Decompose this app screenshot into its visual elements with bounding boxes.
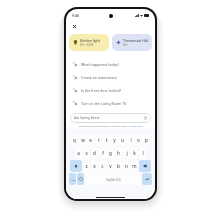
staticText: j <box>126 150 128 156</box>
button[interactable]: e <box>87 134 94 146</box>
staticText: a <box>77 150 80 156</box>
staticText: z <box>85 163 88 169</box>
button[interactable]: s <box>83 147 90 159</box>
staticText: ?123 <box>70 178 76 181</box>
button[interactable]: Backspace <box>139 160 151 172</box>
staticText: n <box>125 163 128 169</box>
button[interactable]: Thermostat Hall <box>112 34 152 51</box>
staticText: Thermostat Hall <box>123 38 149 42</box>
staticText: v <box>109 163 112 169</box>
staticText: Create an automation <box>81 75 117 80</box>
button[interactable]: Shift <box>70 160 82 172</box>
staticText: t <box>106 137 108 143</box>
button[interactable]: o <box>135 134 142 146</box>
staticText: h <box>117 150 120 156</box>
staticText: l <box>142 150 144 156</box>
button[interactable]: j <box>123 147 130 159</box>
button[interactable]: h <box>115 147 122 159</box>
button[interactable]: Ask Spring Street <box>70 113 151 123</box>
staticText: u <box>121 137 124 143</box>
button[interactable]: i <box>127 134 134 146</box>
button[interactable]: ?123 <box>69 173 76 185</box>
button[interactable]: x <box>91 160 98 172</box>
button[interactable]: q <box>71 134 78 146</box>
staticText: g <box>109 150 112 156</box>
button[interactable]: n <box>123 160 130 172</box>
button[interactable]: Learn more <box>130 125 143 128</box>
button[interactable]: What happened today? <box>66 58 155 71</box>
button[interactable]: Create an automation <box>66 71 155 84</box>
staticText: Turn on the Living Room TV <box>81 101 127 106</box>
button[interactable]: d <box>91 147 98 159</box>
staticText: Is the front door locked? <box>81 88 122 93</box>
button[interactable]: p <box>143 134 150 146</box>
staticText: o <box>137 137 140 143</box>
staticText: k <box>133 150 136 156</box>
staticText: i <box>130 137 132 143</box>
button[interactable]: English (US) <box>85 173 141 185</box>
staticText: s <box>85 150 88 156</box>
button[interactable]: z <box>83 160 90 172</box>
button[interactable]: c <box>99 160 106 172</box>
staticText: 9:46 <box>72 13 80 18</box>
button[interactable]: l <box>139 147 146 159</box>
button[interactable]: Enter <box>142 173 152 185</box>
staticText: m <box>132 163 137 169</box>
staticText: Kitchen light <box>80 38 100 42</box>
button[interactable]: y <box>111 134 118 146</box>
staticText: c <box>101 163 104 169</box>
staticText: r <box>98 137 100 143</box>
staticText: On • 60% <box>80 43 94 47</box>
button[interactable]: g <box>107 147 114 159</box>
button[interactable]: Close <box>70 22 78 30</box>
staticText: What happened today? <box>81 62 120 67</box>
button[interactable]: v <box>107 160 114 172</box>
button[interactable]: k <box>131 147 138 159</box>
staticText: f <box>102 150 104 156</box>
button[interactable]: Turn on the Living Room TV <box>66 97 155 110</box>
button[interactable]: m <box>131 160 138 172</box>
staticText: e <box>89 137 92 143</box>
staticText: p <box>145 137 148 143</box>
button[interactable]: t <box>103 134 110 146</box>
staticText: x <box>93 163 96 169</box>
staticText: d <box>93 150 96 156</box>
staticText: English (US) <box>106 178 121 181</box>
button[interactable]: a <box>75 147 82 159</box>
staticText: Gemini can make mistakes, so double-chec… <box>79 125 130 128</box>
button[interactable]: Emoji <box>77 173 84 185</box>
button[interactable]: b <box>115 160 122 172</box>
button[interactable]: u <box>119 134 126 146</box>
button[interactable]: f <box>99 147 106 159</box>
button[interactable]: Is the front door locked? <box>66 84 155 97</box>
button[interactable]: Kitchen light <box>69 34 109 51</box>
staticText: b <box>117 163 120 169</box>
staticText: q <box>73 137 76 143</box>
button[interactable]: r <box>95 134 102 146</box>
staticText: w <box>81 137 85 143</box>
staticText: Ask Spring Street <box>74 116 144 120</box>
button[interactable]: w <box>79 134 86 146</box>
staticText: y <box>113 137 116 143</box>
staticText: On <box>123 43 128 47</box>
